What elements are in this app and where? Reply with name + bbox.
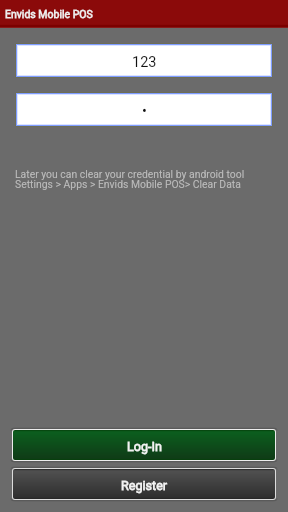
button[interactable]: 123 [18, 46, 270, 75]
staticText: • [142, 103, 147, 120]
button[interactable]: Register [13, 469, 275, 499]
staticText: Envids Mobile POS [5, 8, 93, 20]
staticText: Later you can clear your credential by a… [15, 168, 245, 191]
staticText: 123 [132, 54, 157, 71]
staticText: Register [121, 478, 168, 493]
staticText: Log-In [127, 439, 162, 454]
button[interactable]: Log-In [13, 430, 275, 460]
button[interactable]: • [18, 95, 270, 124]
